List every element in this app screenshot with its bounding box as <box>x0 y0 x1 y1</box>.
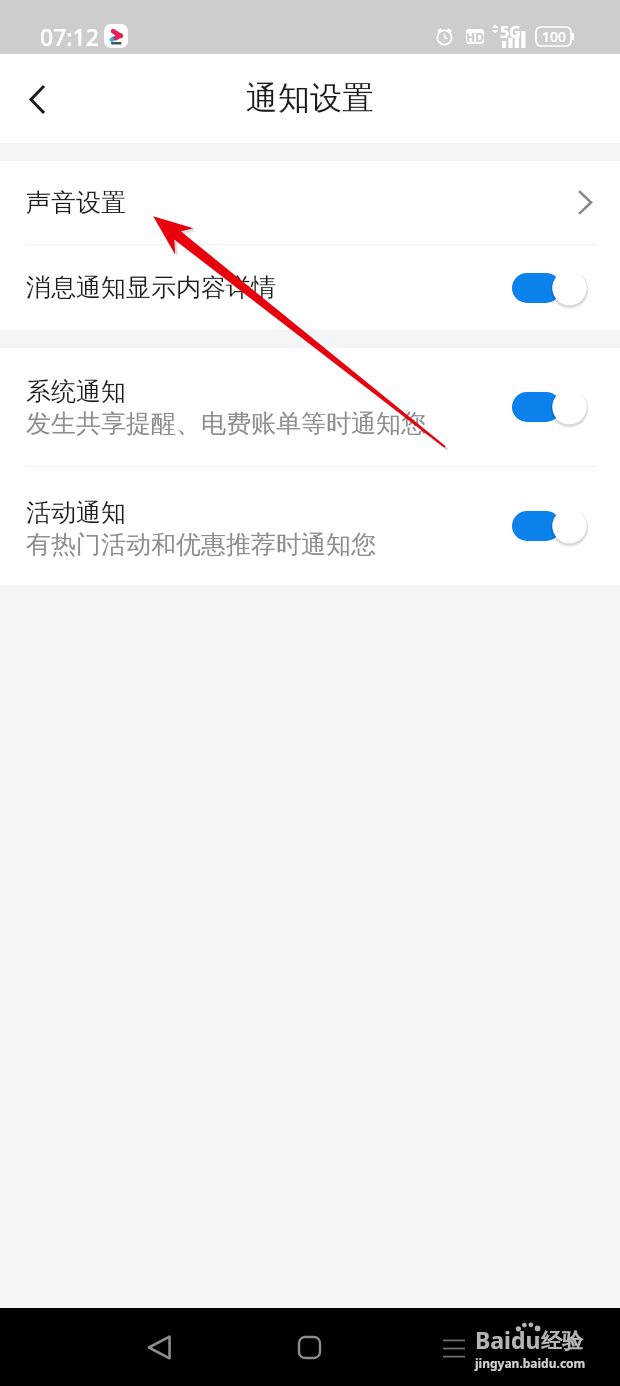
button[interactable]: 消息通知显示内容详情 <box>0 245 620 330</box>
staticText: 发生共享提醒、电费账单等时通知您 <box>26 408 426 439</box>
staticText: 有热门活动和优惠推荐时通知您 <box>26 529 376 560</box>
staticText: 07:12 <box>40 21 99 52</box>
button[interactable]: Back <box>127 1315 191 1379</box>
button[interactable]: Toggle <box>512 506 587 546</box>
button[interactable]: Home <box>277 1315 341 1379</box>
staticText: 5G <box>500 21 521 43</box>
staticText: HD <box>466 29 484 44</box>
button[interactable]: Back <box>0 59 74 139</box>
staticText: jingyan.baidu.com <box>475 1355 586 1371</box>
staticText: 经验 <box>541 1328 583 1354</box>
staticText: Baidu <box>475 1324 541 1355</box>
button[interactable]: 声音设置 <box>0 161 620 244</box>
staticText: 消息通知显示内容详情 <box>26 272 276 303</box>
staticText: 活动通知 <box>26 497 126 528</box>
button[interactable]: Toggle <box>512 268 587 308</box>
staticText: 通知设置 <box>246 78 374 118</box>
button[interactable]: Toggle <box>512 387 587 427</box>
button[interactable]: 系统通知 <box>0 348 620 466</box>
staticText: 系统通知 <box>26 376 126 407</box>
button[interactable]: 活动通知 <box>0 467 620 585</box>
staticText: 声音设置 <box>26 187 126 218</box>
staticText: 100 <box>542 27 567 46</box>
